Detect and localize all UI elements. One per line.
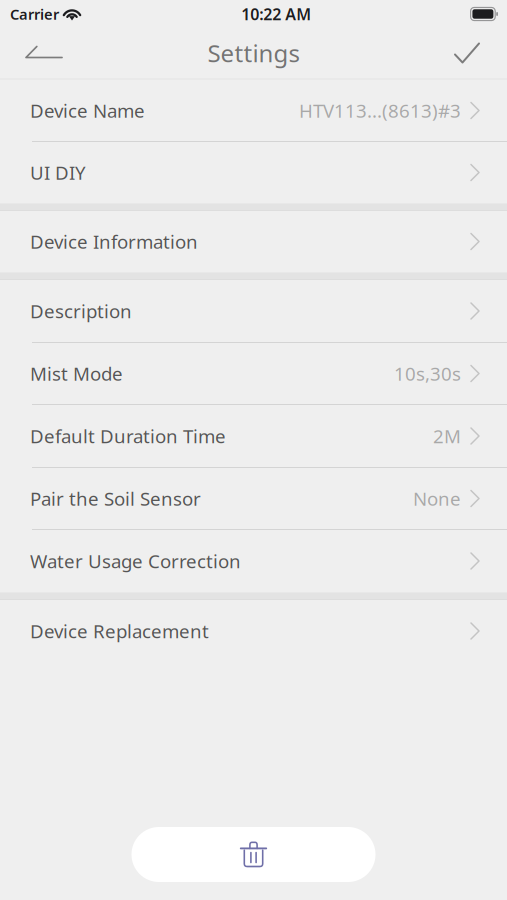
button[interactable]: Device Replacement bbox=[0, 600, 507, 662]
staticText: Device Replacement bbox=[30, 619, 209, 643]
button[interactable]: Back bbox=[0, 27, 63, 78]
staticText: None bbox=[413, 486, 461, 511]
staticText: Settings bbox=[207, 37, 299, 69]
staticText: 10s,30s bbox=[394, 361, 461, 386]
button[interactable]: Description bbox=[0, 280, 507, 343]
staticText: Device Information bbox=[30, 229, 198, 254]
button[interactable]: Device Name bbox=[0, 80, 507, 142]
button[interactable]: UI DIY bbox=[0, 142, 507, 203]
staticText: HTV113...(8613)#3 bbox=[299, 98, 461, 123]
button[interactable]: Done bbox=[454, 28, 507, 77]
staticText: Carrier bbox=[10, 4, 59, 24]
staticText: UI DIY bbox=[30, 160, 86, 185]
staticText: Default Duration Time bbox=[30, 424, 226, 448]
staticText: 2M bbox=[433, 424, 461, 448]
staticText: Description bbox=[30, 299, 132, 323]
staticText: 10:22 AM bbox=[241, 3, 311, 25]
staticText: Device Name bbox=[30, 98, 145, 123]
staticText: Water Usage Correction bbox=[30, 549, 241, 573]
button[interactable]: Device Information bbox=[0, 211, 507, 272]
staticText: Mist Mode bbox=[30, 361, 123, 386]
staticText: Pair the Soil Sensor bbox=[30, 486, 201, 511]
button[interactable]: Default Duration Time bbox=[0, 405, 507, 468]
button[interactable]: Mist Mode bbox=[0, 343, 507, 405]
button[interactable]: Water Usage Correction bbox=[0, 530, 507, 592]
button[interactable]: Delete device bbox=[131, 827, 375, 882]
button[interactable]: Pair the Soil Sensor bbox=[0, 468, 507, 530]
